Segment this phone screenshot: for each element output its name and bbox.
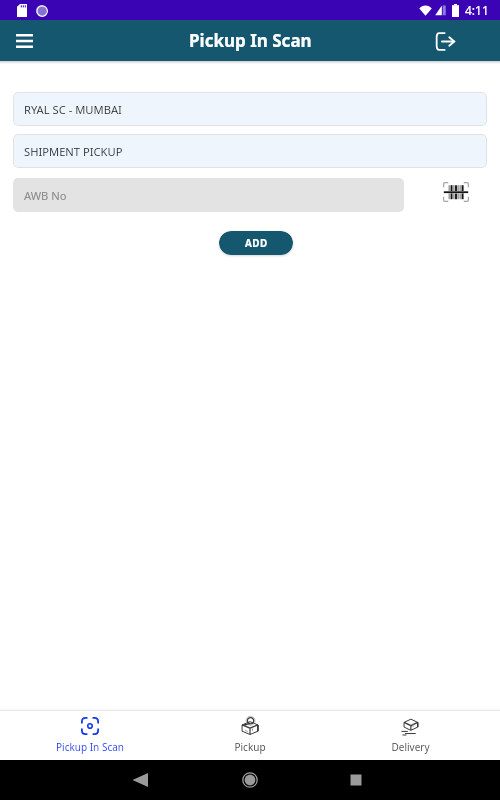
button[interactable]: Logout [428, 24, 462, 58]
button[interactable]: Pickup [170, 711, 330, 760]
button[interactable]: Scan barcode [440, 176, 472, 208]
button[interactable]: Pickup In Scan [10, 711, 170, 760]
staticText: Pickup In Scan [56, 740, 124, 754]
staticText: 4:11 [465, 2, 489, 18]
button[interactable]: Menu [6, 23, 42, 59]
staticText: ADD [245, 237, 268, 250]
staticText: Delivery [391, 740, 430, 754]
button[interactable]: RYAL SC - MUMBAI [13, 92, 487, 126]
button[interactable]: SHIPMENT PICKUP [13, 134, 487, 168]
button[interactable]: AWB No [13, 178, 404, 212]
button[interactable]: Delivery [330, 711, 490, 760]
button[interactable]: ADD [219, 231, 293, 255]
staticText: SHIPMENT PICKUP [24, 144, 123, 159]
staticText: Pickup In Scan [189, 29, 312, 52]
staticText: Pickup [234, 740, 266, 754]
staticText: AWB No [24, 188, 67, 203]
staticText: RYAL SC - MUMBAI [24, 102, 122, 117]
